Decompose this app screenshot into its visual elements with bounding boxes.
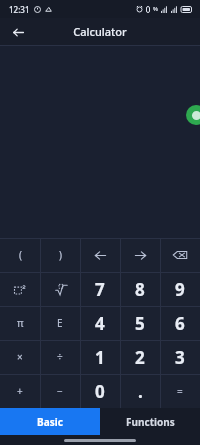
button[interactable]: . [120,374,160,408]
staticText: ( [19,248,22,262]
staticText: − [57,384,63,398]
button[interactable]: 1 [80,340,120,374]
button[interactable]: Backspace [160,238,200,272]
button[interactable]: E [40,306,80,340]
button[interactable]: 0 [80,374,120,408]
staticText: Basic [37,415,63,429]
staticText: . [138,380,143,403]
staticText: 6 [175,312,185,335]
staticText: 7 [95,278,105,301]
button[interactable]: 8 [120,272,160,306]
staticText: 12:31 [9,4,30,15]
staticText: 2 [135,346,145,369]
button[interactable]: ( [0,238,40,272]
button[interactable]: Back [6,20,30,44]
staticText: π [17,316,24,330]
staticText: + [17,384,23,398]
staticText: ) [59,248,62,262]
button[interactable]: = [160,374,200,408]
button[interactable]: ) [40,238,80,272]
button[interactable]: 7 [80,272,120,306]
button[interactable]: − [40,374,80,408]
button[interactable]: + [0,374,40,408]
button[interactable]: π [0,306,40,340]
staticText: 9 [175,278,185,301]
button[interactable]: Move left [80,238,120,272]
button[interactable]: Square root [40,272,80,306]
button[interactable]: ÷ [40,340,80,374]
staticText: % [153,5,158,13]
button[interactable]: Basic [0,408,100,435]
button[interactable]: 9 [160,272,200,306]
button[interactable]: 5 [120,306,160,340]
staticText: 3 [175,346,185,369]
button[interactable]: Square [0,272,40,306]
button[interactable]: 6 [160,306,200,340]
staticText: 4 [95,312,105,335]
staticText: Functions [126,415,175,429]
staticText: 5 [135,312,145,335]
staticText: ÷ [57,350,63,364]
staticText: Calculator [73,24,127,39]
staticText: × [17,350,23,364]
button[interactable]: 4 [80,306,120,340]
staticText: 8 [135,278,145,301]
staticText: E [57,316,63,330]
staticText: 1 [95,346,105,369]
staticText: 0 [95,380,105,403]
button[interactable]: Assistant [186,105,200,125]
button[interactable]: 2 [120,340,160,374]
button[interactable]: 3 [160,340,200,374]
button[interactable]: Functions [100,408,200,435]
staticText: = [177,384,183,398]
button[interactable]: Move right [120,238,160,272]
button[interactable]: × [0,340,40,374]
